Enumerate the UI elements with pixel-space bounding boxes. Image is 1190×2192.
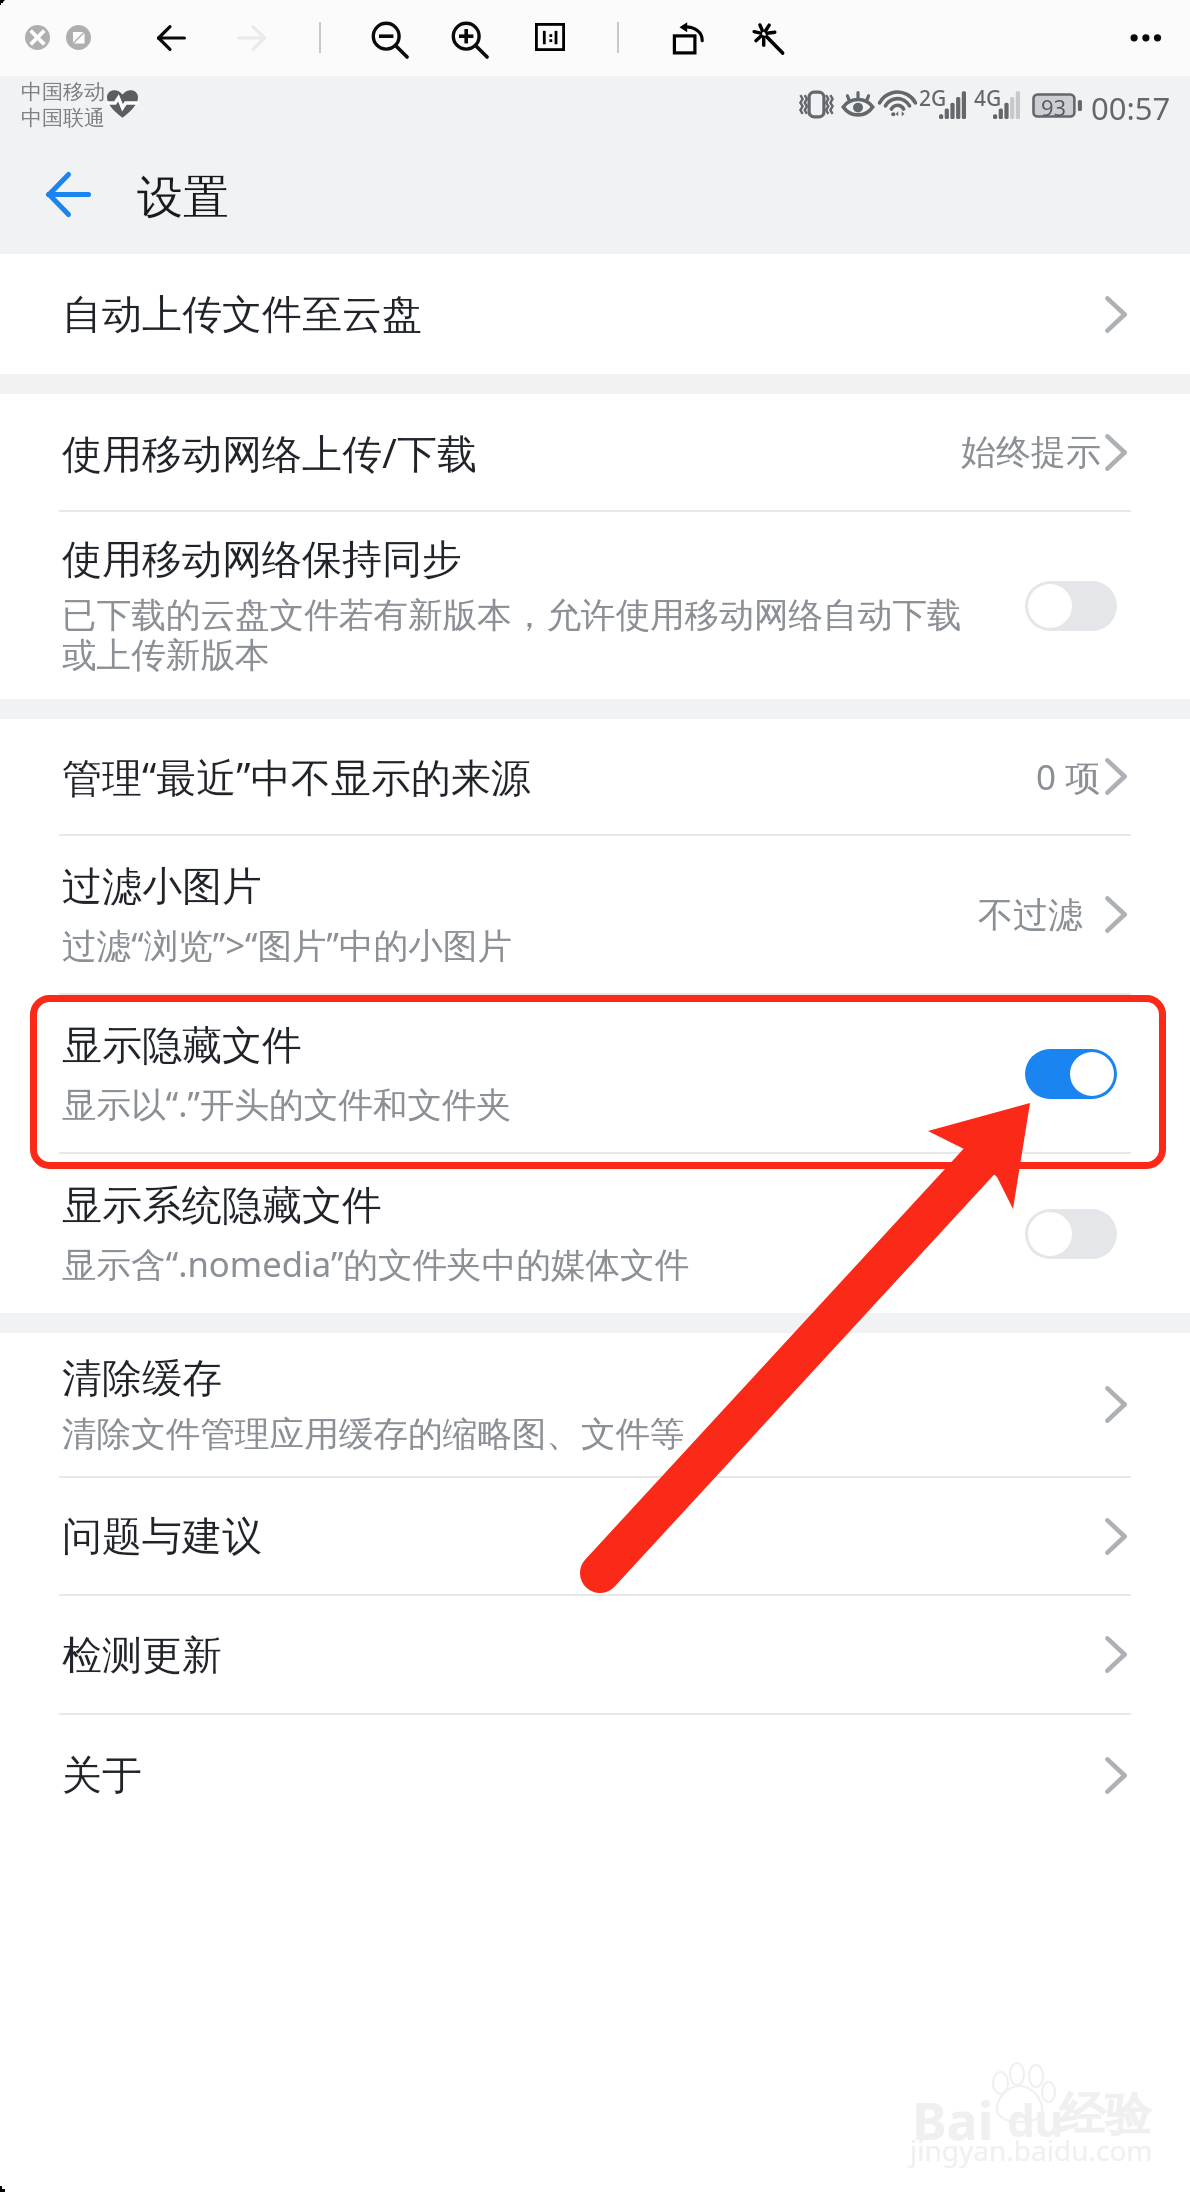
staticText: 显示含“.nomedia”的文件夹中的媒体文件 (62, 1240, 690, 1287)
staticText: 管理“最近”中不显示的来源 (62, 749, 531, 804)
button[interactable]: 清除缓存 (0, 1333, 1190, 1476)
button[interactable]: Toggle (1025, 581, 1117, 631)
button[interactable]: Zoom in (451, 21, 489, 59)
button[interactable]: 使用移动网络保持同步 (0, 512, 1190, 699)
staticText: 过滤“浏览”>“图片”中的小图片 (62, 921, 512, 968)
button[interactable]: 关于 (0, 1715, 1190, 1835)
button[interactable]: 过滤小图片 (0, 836, 1190, 993)
button[interactable]: Rotate (672, 18, 708, 54)
staticText: 关于 (62, 1750, 142, 1800)
button[interactable]: Redo (237, 25, 266, 51)
staticText: 设置 (137, 169, 229, 227)
staticText: Bai (912, 2084, 994, 2155)
button[interactable]: 问题与建议 (0, 1478, 1190, 1594)
button[interactable]: 检测更新 (0, 1596, 1190, 1713)
staticText: 始终提示 (961, 430, 1101, 474)
button[interactable]: 显示系统隐藏文件 (0, 1154, 1190, 1313)
staticText: 清除文件管理应用缓存的缩略图、文件等 (62, 1413, 685, 1457)
staticText: 使用移动网络保持同步 (62, 534, 462, 584)
button[interactable]: Toggle (1025, 1209, 1117, 1259)
button[interactable]: Zoom out (371, 21, 409, 59)
staticText: 显示以“.”开头的文件和文件夹 (62, 1080, 512, 1127)
button[interactable]: 管理“最近”中不显示的来源 (0, 719, 1190, 834)
button[interactable]: Original size (66, 25, 91, 50)
staticText: 经验 (1059, 2086, 1151, 2144)
staticText: 显示系统隐藏文件 (62, 1180, 382, 1230)
button[interactable]: Auto enhance (744, 16, 786, 58)
staticText: 清除缓存 (62, 1353, 222, 1403)
staticText: 自动上传文件至云盘 (62, 289, 422, 339)
button[interactable]: More options (1119, 22, 1162, 54)
staticText: 已下载的云盘文件若有新版本，允许使用移动网络自动下载 或上传新版本 (62, 594, 962, 677)
staticText: 93 (1041, 92, 1067, 117)
button[interactable]: Toggle (1025, 1049, 1117, 1099)
button[interactable]: 使用移动网络上传/下载 (0, 394, 1190, 510)
staticText: 显示隐藏文件 (62, 1020, 302, 1070)
staticText: jingyan.baidu.com (910, 2131, 1153, 2169)
staticText: 4G (974, 84, 1002, 113)
staticText: 中国移动 (21, 79, 105, 105)
button[interactable]: Close (25, 25, 50, 50)
button[interactable]: Undo (157, 25, 186, 51)
button[interactable]: 自动上传文件至云盘 (0, 254, 1190, 374)
staticText: 不过滤 (978, 893, 1083, 937)
staticText: 检测更新 (62, 1630, 222, 1680)
staticText: 2G (919, 84, 947, 113)
staticText: 使用移动网络上传/下载 (62, 425, 477, 480)
button[interactable]: Actual size (535, 23, 565, 51)
button[interactable]: Navigate up (46, 172, 91, 217)
staticText: 问题与建议 (62, 1511, 262, 1561)
staticText: 00:57 (1091, 87, 1171, 129)
staticText: du (1007, 2090, 1064, 2150)
button[interactable]: 显示隐藏文件 (0, 995, 1190, 1152)
staticText: 过滤小图片 (62, 861, 262, 911)
staticText: 0 项 (1036, 753, 1101, 801)
staticText: 中国联通 (21, 105, 105, 131)
